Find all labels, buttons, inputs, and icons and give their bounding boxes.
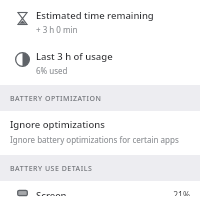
staticText: + 3 h 0 min xyxy=(36,24,78,35)
staticText: 6% used xyxy=(36,65,68,76)
staticText: Ignore battery optimizations for certain… xyxy=(10,134,179,145)
button[interactable]: Ignore optimizations xyxy=(0,111,200,152)
staticText: BATTERY OPTIMIZATION xyxy=(10,94,102,104)
button[interactable]: Screen xyxy=(0,184,200,200)
staticText: Ignore optimizations xyxy=(10,118,105,131)
button[interactable]: Estimated time remaining xyxy=(0,4,200,40)
staticText: Last 3 h of usage xyxy=(36,50,113,63)
staticText: 21% xyxy=(173,189,190,196)
staticText: Screen xyxy=(36,189,67,196)
staticText: BATTERY USE DETAILS xyxy=(10,164,93,174)
staticText: Estimated time remaining xyxy=(36,9,154,22)
button[interactable]: Last 3 h of usage xyxy=(0,45,200,81)
